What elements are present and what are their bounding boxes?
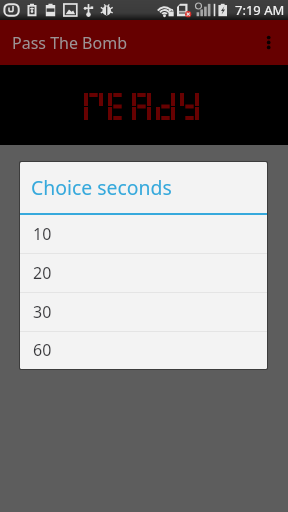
- button[interactable]: 10: [20, 215, 267, 254]
- staticText: 30: [33, 301, 52, 323]
- staticText: 10: [33, 223, 52, 245]
- button[interactable]: 60: [20, 332, 267, 369]
- staticText: 7:19 AM: [235, 1, 285, 19]
- button[interactable]: 30: [20, 293, 267, 332]
- staticText: Pass The Bomb: [12, 32, 127, 54]
- button[interactable]: More options: [258, 20, 288, 65]
- staticText: 60: [33, 339, 52, 361]
- staticText: Choice seconds: [31, 174, 172, 200]
- staticText: 20: [33, 262, 52, 284]
- button[interactable]: 20: [20, 254, 267, 293]
